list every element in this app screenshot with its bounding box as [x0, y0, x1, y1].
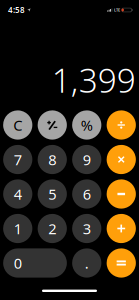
staticText: 1,399 — [52, 58, 136, 102]
button[interactable]: multiply — [107, 145, 136, 174]
button[interactable]: 1 — [3, 214, 32, 243]
staticText: . — [85, 253, 89, 273]
button[interactable]: 3 — [72, 214, 101, 243]
button[interactable]: 9 — [72, 145, 101, 174]
staticText: 5 — [48, 184, 56, 204]
button[interactable]: 0 — [3, 248, 67, 278]
staticText: 1 — [14, 219, 22, 238]
staticText: 4 — [14, 184, 22, 204]
button[interactable]: 5 — [38, 179, 67, 209]
button[interactable]: . — [72, 248, 101, 278]
staticText: C — [13, 115, 22, 135]
button[interactable]: plus minus — [38, 110, 67, 140]
button[interactable]: 8 — [38, 145, 67, 174]
staticText: 8 — [48, 150, 56, 169]
staticText: 2 — [48, 219, 56, 238]
staticText: 0 — [14, 253, 22, 273]
button[interactable]: 7 — [3, 145, 32, 174]
button[interactable]: % — [72, 110, 101, 140]
button[interactable]: equals — [107, 248, 136, 278]
staticText: 6 — [83, 184, 91, 204]
button[interactable]: divide — [107, 110, 136, 140]
button[interactable]: C — [3, 110, 32, 140]
staticText: LTE — [114, 7, 120, 13]
button[interactable]: minus — [107, 179, 136, 209]
button[interactable]: 4 — [3, 179, 32, 209]
button[interactable]: 6 — [72, 179, 101, 209]
staticText: 4:58 — [8, 5, 25, 15]
staticText: 7 — [14, 150, 22, 169]
staticText: 9 — [83, 150, 91, 169]
staticText: 3 — [83, 219, 91, 238]
staticText: % — [81, 115, 93, 135]
button[interactable]: 2 — [38, 214, 67, 243]
button[interactable]: plus — [107, 214, 136, 243]
